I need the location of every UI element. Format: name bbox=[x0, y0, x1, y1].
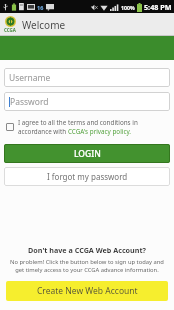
staticText: 16 bbox=[37, 4, 44, 11]
staticText: 100% bbox=[121, 4, 135, 11]
staticText: Username bbox=[9, 72, 51, 84]
button[interactable]: I forgot my password bbox=[4, 167, 170, 186]
staticText: I agree to all the terms and conditions … bbox=[18, 118, 138, 127]
other: Agree to terms checkbox bbox=[6, 123, 14, 131]
staticText: CCGA's privacy policy. bbox=[68, 127, 132, 136]
staticText: No problem! Click the button below to si… bbox=[6, 258, 168, 274]
staticText: I forgot my password bbox=[47, 171, 128, 182]
staticText: Password bbox=[10, 96, 49, 108]
staticText: Don't have a CCGA Web Account? bbox=[6, 245, 168, 255]
staticText: CCGA bbox=[4, 27, 16, 33]
button[interactable]: LOGIN bbox=[4, 144, 170, 163]
button[interactable]: Create New Web Account bbox=[6, 281, 168, 301]
button[interactable]: Username bbox=[4, 68, 170, 87]
staticText: Create New Web Account bbox=[37, 285, 138, 297]
button[interactable]: Agree to terms checkbox bbox=[4, 116, 170, 138]
staticText: LOGIN bbox=[74, 148, 101, 160]
staticText: 5:48 PM bbox=[144, 2, 172, 12]
staticText: Welcome bbox=[22, 18, 66, 32]
staticText: accordance with bbox=[18, 127, 68, 136]
button[interactable]: Password bbox=[4, 92, 170, 111]
